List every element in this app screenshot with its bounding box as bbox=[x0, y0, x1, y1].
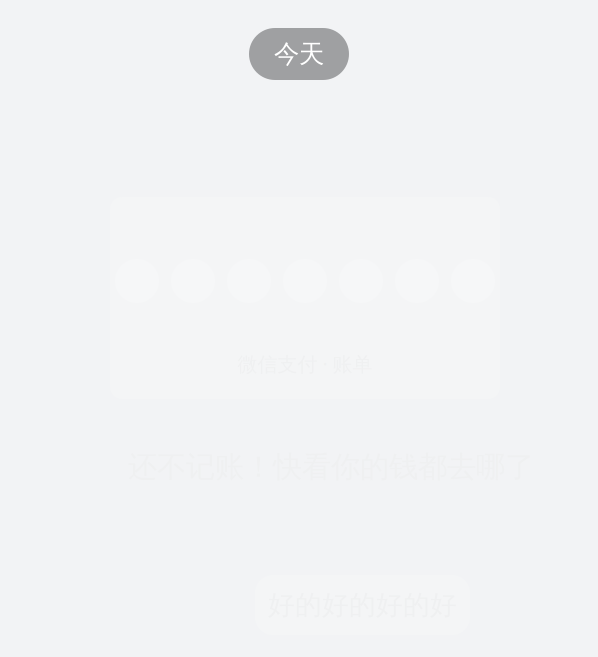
staticText: 今天 bbox=[274, 38, 324, 69]
button[interactable]: 今天 bbox=[249, 28, 349, 80]
